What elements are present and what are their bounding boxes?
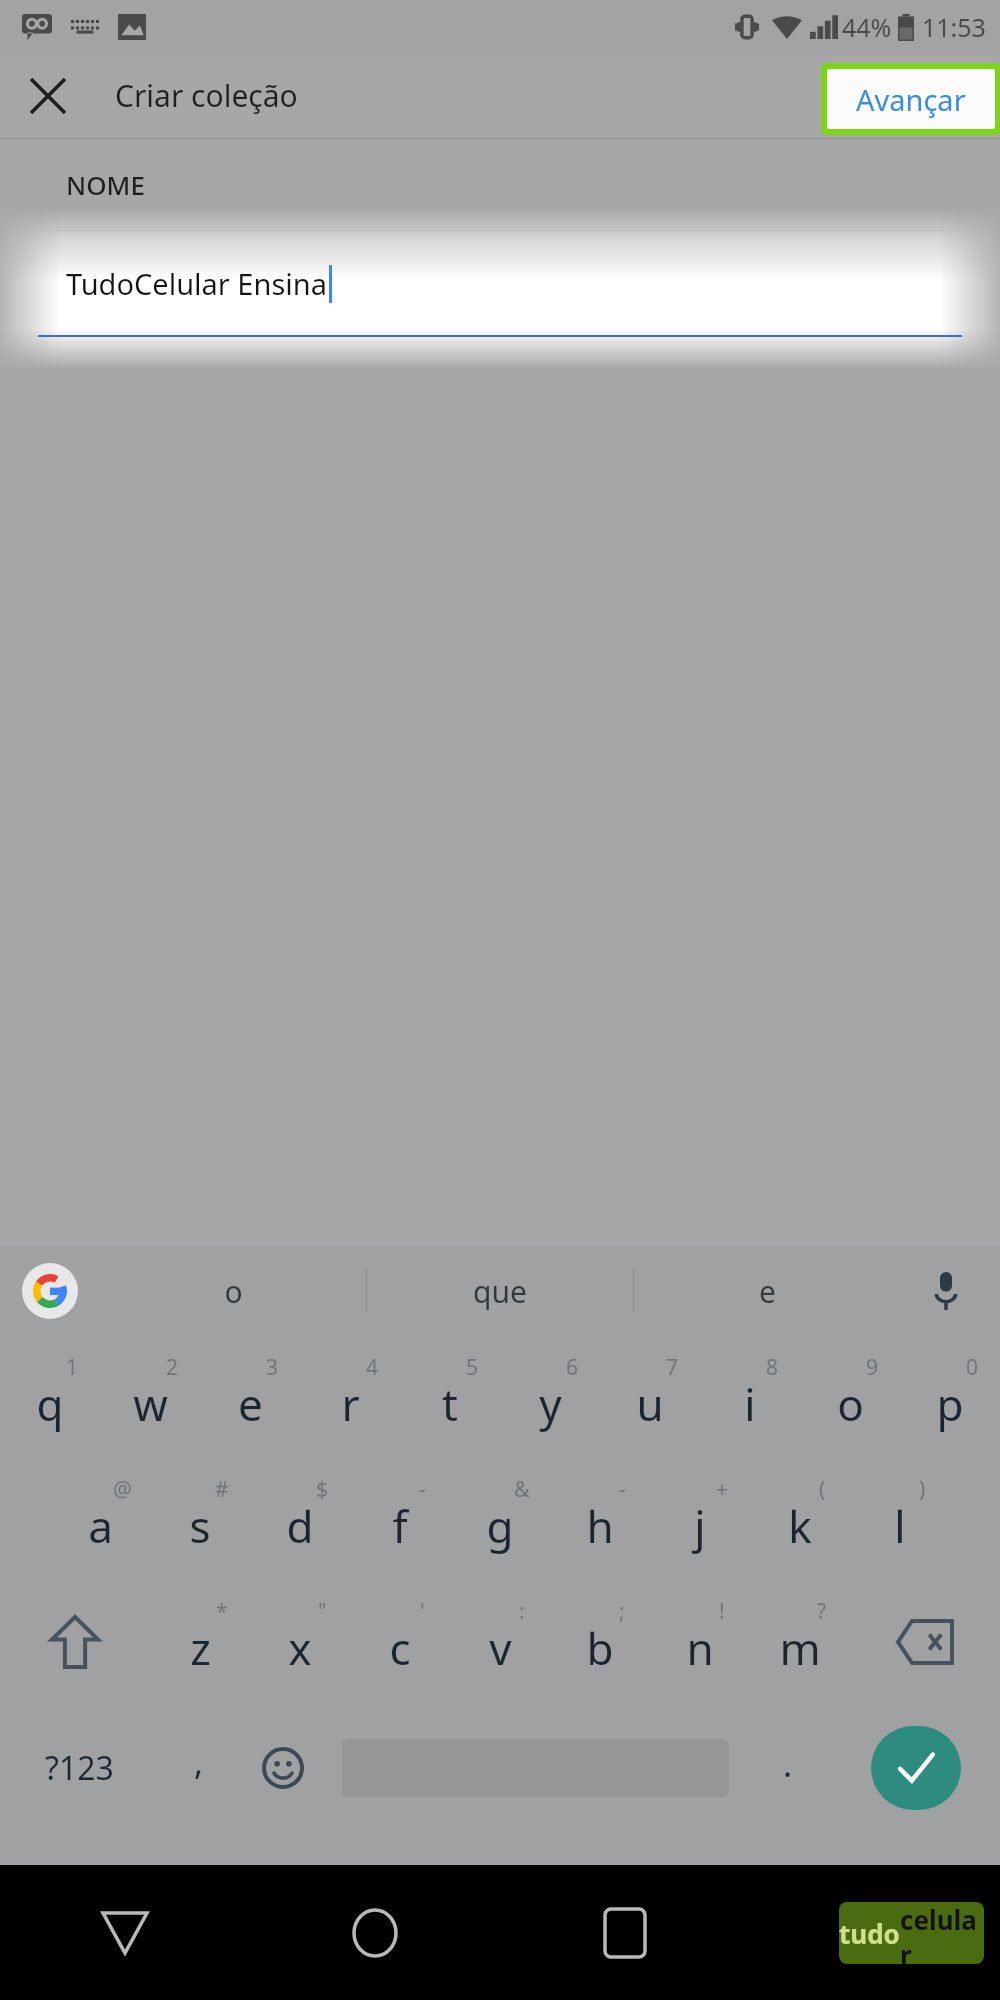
button[interactable]: .: [743, 1703, 832, 1833]
button[interactable]: Emoji: [238, 1703, 327, 1833]
button[interactable]: t: [400, 1337, 500, 1459]
staticText: y: [539, 1374, 562, 1434]
button[interactable]: n: [650, 1581, 750, 1703]
button[interactable]: ,: [159, 1703, 238, 1833]
button[interactable]: g: [450, 1459, 550, 1581]
button[interactable]: Google: [22, 1263, 78, 1319]
staticText: ?123: [45, 1746, 114, 1790]
button[interactable]: x: [250, 1581, 350, 1703]
staticText: e: [238, 1374, 263, 1434]
staticText: x: [288, 1618, 312, 1678]
button[interactable]: s: [150, 1459, 250, 1581]
button[interactable]: a: [50, 1459, 150, 1581]
button[interactable]: Confirmar: [832, 1703, 1000, 1833]
button[interactable]: i: [700, 1337, 800, 1459]
staticText: p: [936, 1374, 964, 1434]
staticText: 1: [66, 1353, 79, 1382]
button[interactable]: Início: [250, 1865, 500, 2000]
staticText: ?: [817, 1597, 827, 1626]
staticText: !: [719, 1597, 725, 1626]
button[interactable]: w: [100, 1337, 200, 1459]
staticText: g: [486, 1496, 514, 1556]
button[interactable]: l: [850, 1459, 950, 1581]
staticText: *: [216, 1597, 228, 1626]
button[interactable]: Recentes: [500, 1865, 750, 2000]
staticText: (: [819, 1475, 826, 1504]
staticText: v: [489, 1618, 512, 1678]
button[interactable]: o: [100, 1256, 366, 1326]
button[interactable]: j: [650, 1459, 750, 1581]
staticText: ;: [619, 1597, 625, 1626]
button[interactable]: Shift: [0, 1581, 150, 1703]
staticText: #: [215, 1475, 229, 1504]
staticText: ": [318, 1597, 327, 1626]
button[interactable]: e: [634, 1256, 900, 1326]
staticText: 6: [566, 1353, 579, 1382]
staticText: ': [420, 1597, 425, 1626]
button[interactable]: d: [250, 1459, 350, 1581]
staticText: 3: [266, 1353, 279, 1382]
staticText: &: [514, 1475, 530, 1504]
button[interactable]: Avançar: [827, 69, 995, 129]
staticText: d: [286, 1496, 314, 1556]
staticText: e: [759, 1271, 776, 1312]
button[interactable]: r: [300, 1337, 400, 1459]
button[interactable]: Fechar: [20, 68, 76, 124]
staticText: s: [189, 1496, 211, 1556]
button[interactable]: b: [550, 1581, 650, 1703]
staticText: ): [919, 1475, 926, 1504]
staticText: NOME: [66, 167, 145, 202]
button[interactable]: p: [900, 1337, 1000, 1459]
staticText: l: [894, 1496, 906, 1556]
staticText: que: [473, 1271, 527, 1312]
staticText: z: [190, 1618, 211, 1678]
button[interactable]: v: [450, 1581, 550, 1703]
button[interactable]: u: [600, 1337, 700, 1459]
button[interactable]: m: [750, 1581, 850, 1703]
staticText: c: [389, 1618, 411, 1678]
staticText: 2: [166, 1353, 179, 1382]
button[interactable]: Apagar: [850, 1581, 1000, 1703]
staticText: $: [316, 1475, 329, 1504]
staticText: m: [779, 1618, 821, 1678]
button[interactable]: k: [750, 1459, 850, 1581]
staticText: 4: [366, 1353, 379, 1382]
staticText: q: [36, 1374, 64, 1434]
staticText: 5: [466, 1353, 479, 1382]
staticText: 0: [966, 1353, 979, 1382]
staticText: r: [341, 1374, 360, 1434]
button[interactable]: Entrada de voz: [918, 1263, 974, 1319]
staticText: Avançar: [856, 80, 966, 119]
staticText: tudo: [839, 1916, 900, 1951]
staticText: u: [636, 1374, 664, 1434]
button[interactable]: o: [800, 1337, 900, 1459]
staticText: f: [392, 1496, 408, 1556]
staticText: TudoCelular Ensina: [66, 264, 327, 303]
button[interactable]: ?123: [0, 1703, 159, 1833]
staticText: @: [113, 1475, 132, 1504]
staticText: 7: [666, 1353, 679, 1382]
staticText: b: [586, 1618, 614, 1678]
staticText: .: [783, 1741, 793, 1787]
button[interactable]: f: [350, 1459, 450, 1581]
button[interactable]: que: [367, 1256, 633, 1326]
staticText: celular: [900, 1902, 984, 1964]
staticText: k: [788, 1496, 812, 1556]
staticText: w: [133, 1374, 168, 1434]
button[interactable]: q: [0, 1337, 100, 1459]
staticText: +: [716, 1475, 729, 1504]
staticText: Criar coleção: [115, 75, 298, 116]
staticText: :: [519, 1597, 525, 1626]
staticText: ,: [194, 1739, 204, 1785]
button[interactable]: Voltar: [0, 1865, 250, 2000]
button[interactable]: c: [350, 1581, 450, 1703]
staticText: 9: [866, 1353, 879, 1382]
staticText: a: [88, 1496, 113, 1556]
button[interactable]: e: [200, 1337, 300, 1459]
button[interactable]: h: [550, 1459, 650, 1581]
staticText: i: [744, 1374, 756, 1434]
staticText: o: [837, 1374, 864, 1434]
button[interactable]: z: [150, 1581, 250, 1703]
button[interactable]: Espaço: [327, 1703, 743, 1833]
button[interactable]: y: [500, 1337, 600, 1459]
